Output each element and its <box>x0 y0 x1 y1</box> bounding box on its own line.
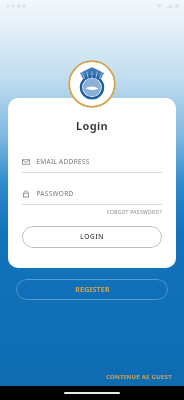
button[interactable]: REGISTER <box>16 279 168 300</box>
button[interactable]: FORGOT PASSWORD? <box>22 209 162 216</box>
staticText: LOGIN <box>80 232 104 242</box>
button[interactable]: CONTINUE AS GUEST <box>102 370 176 384</box>
staticText: Login <box>76 118 108 133</box>
staticText: PASSWORD <box>36 189 74 198</box>
staticText: CONTINUE AS GUEST <box>106 373 172 381</box>
staticText: FORGOT PASSWORD? <box>107 209 162 216</box>
button[interactable]: LOGIN <box>22 226 162 248</box>
staticText: REGISTER <box>75 285 110 295</box>
staticText: EMAIL ADDRESS <box>36 157 90 166</box>
